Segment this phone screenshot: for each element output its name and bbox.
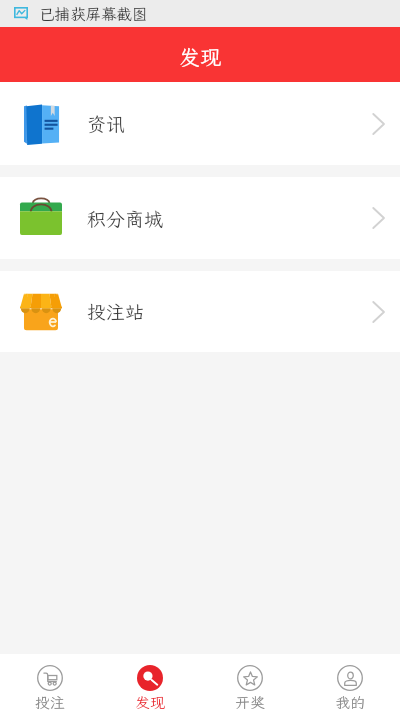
staticText: 积分商城: [87, 206, 164, 231]
button[interactable]: Results: [200, 654, 300, 711]
staticText: 我的: [335, 693, 366, 711]
staticText: 投注: [35, 693, 66, 711]
button[interactable]: Bets: [0, 654, 100, 711]
button[interactable]: Profile: [300, 654, 400, 711]
other: Profile: [337, 665, 363, 691]
staticText: 开奖: [235, 693, 266, 711]
button[interactable]: 积分商城: [0, 177, 400, 259]
staticText: 发现: [179, 43, 221, 71]
other: Bets: [37, 665, 63, 691]
staticText: 资讯: [87, 111, 126, 136]
staticText: 已捕获屏幕截图: [39, 4, 148, 24]
button[interactable]: Discover: [100, 654, 200, 711]
staticText: 投注站: [87, 299, 145, 324]
staticText: 发现: [135, 693, 166, 711]
other: Results: [237, 665, 263, 691]
other: Discover: [137, 665, 163, 691]
button[interactable]: 资讯: [0, 82, 400, 165]
button[interactable]: 投注站: [0, 271, 400, 352]
